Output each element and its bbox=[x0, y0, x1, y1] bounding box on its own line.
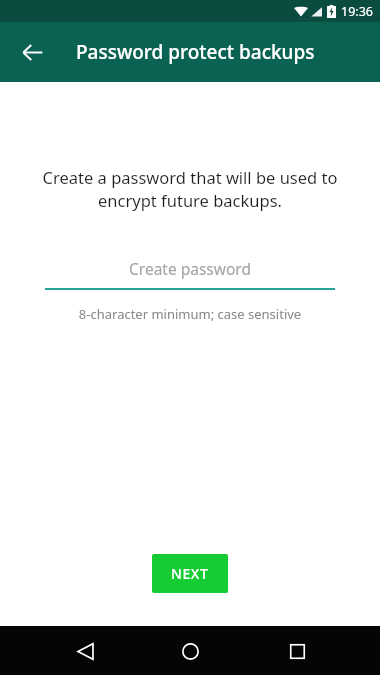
button[interactable]: NEXT bbox=[152, 554, 228, 593]
button[interactable]: Create password bbox=[45, 258, 335, 290]
button[interactable]: Home bbox=[168, 629, 212, 673]
staticText: 19:36 bbox=[341, 3, 373, 20]
button[interactable]: Back bbox=[8, 28, 56, 76]
button[interactable]: Recent apps bbox=[275, 629, 319, 673]
staticText: NEXT bbox=[171, 564, 209, 583]
staticText: Create password bbox=[129, 258, 251, 279]
staticText: Password protect backups bbox=[76, 39, 315, 65]
button[interactable]: Back bbox=[63, 629, 107, 673]
staticText: Create a password that will be used to e… bbox=[28, 166, 352, 212]
staticText: 8-character minimum; case sensitive bbox=[0, 305, 380, 323]
